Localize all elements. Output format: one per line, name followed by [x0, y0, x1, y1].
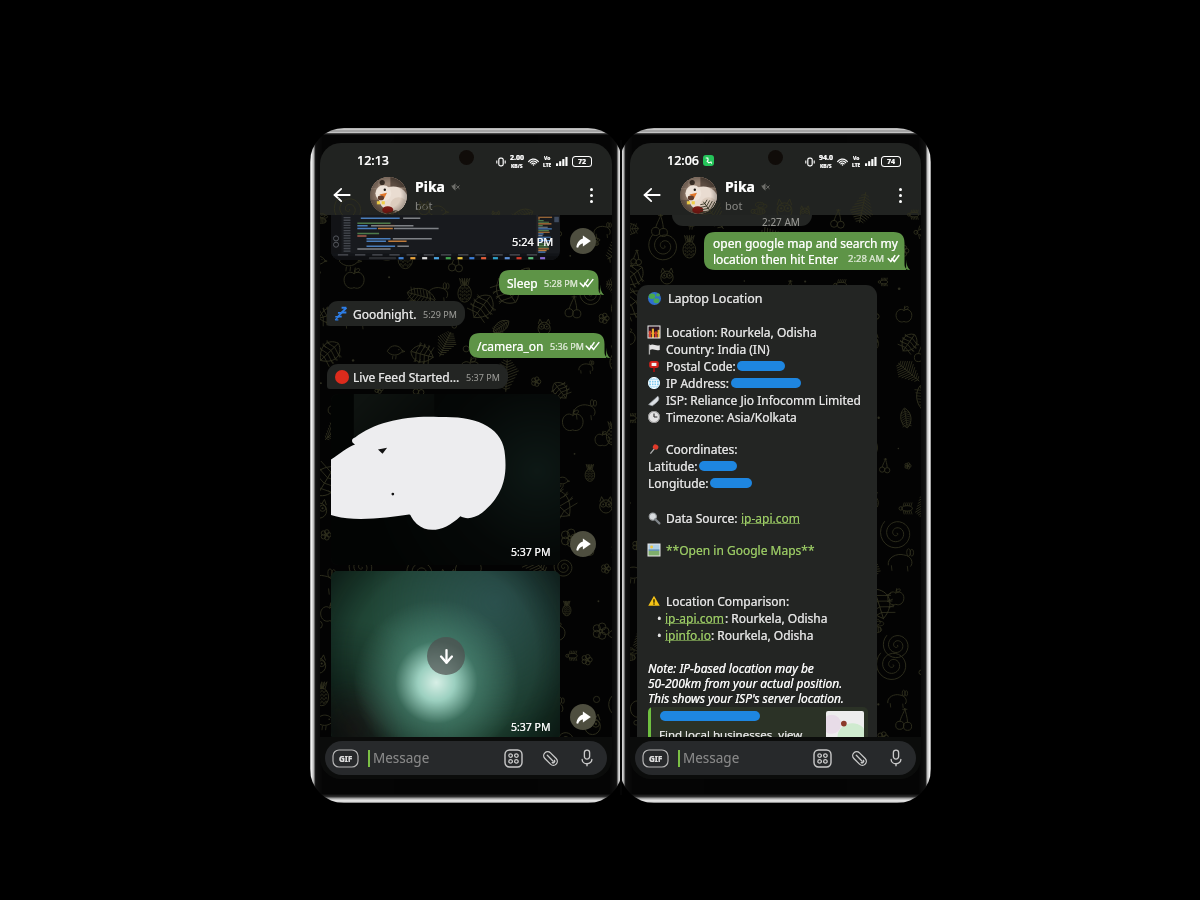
button[interactable]: More options [888, 183, 912, 207]
staticText: 5:37 PM [511, 545, 551, 559]
staticText: • [657, 610, 665, 626]
staticText: GIF [649, 753, 663, 764]
button[interactable]: GIF [643, 750, 668, 767]
staticText: 5:37 PM [511, 720, 551, 734]
button[interactable]: Voice message [575, 746, 599, 770]
staticText: Pika [725, 177, 755, 196]
staticText: 94.0 [819, 153, 833, 163]
staticText: KB/S [511, 163, 523, 170]
staticText: ipinfo.io [665, 627, 711, 643]
staticText: 5:24 PM [512, 234, 554, 249]
staticText: bot [725, 198, 743, 213]
button[interactable]: Photo [331, 394, 560, 565]
staticText: Note: IP-based location may be 50-200km … [648, 660, 844, 706]
staticText: bot [415, 198, 433, 213]
button[interactable]: /camera_on [469, 333, 610, 358]
staticText: Message [683, 749, 740, 767]
button[interactable]: Laptop Location [637, 285, 877, 763]
staticText: Sleep [507, 275, 538, 291]
staticText: 2:28 AM [848, 252, 885, 265]
staticText: Postal Code: [666, 358, 736, 374]
staticText: Vo [853, 155, 860, 162]
staticText: Data Source: [666, 510, 741, 526]
staticText: Timezone: Asia/Kolkata [666, 409, 797, 425]
staticText: Coordinates: [666, 441, 738, 457]
staticText: : Rourkela, Odisha [711, 627, 814, 643]
staticText: : Rourkela, Odisha [725, 610, 828, 626]
staticText: 5:37 PM [466, 371, 500, 383]
button[interactable]: Voice message [884, 746, 908, 770]
staticText: 74 [887, 157, 896, 166]
staticText: 5:29 PM [423, 308, 457, 320]
button[interactable]: Forward [570, 704, 596, 730]
staticText: 12:13 [357, 152, 390, 169]
staticText: Live Feed Started… [353, 369, 460, 385]
staticText: ip-api.com [741, 510, 801, 526]
staticText: LTE [852, 162, 861, 169]
staticText: Find local businesses, view [659, 727, 803, 743]
button[interactable]: Find local businesses, view [648, 707, 868, 757]
staticText: KB/S [820, 163, 832, 170]
staticText: 12:06 [667, 152, 700, 169]
button[interactable]: Screenshot [331, 215, 560, 260]
button[interactable]: Back [639, 182, 665, 208]
staticText: Location: Rourkela, Odisha [666, 324, 817, 340]
button[interactable]: More options [579, 183, 603, 207]
staticText: Latitude: [648, 458, 698, 474]
staticText: IP Address: [666, 375, 730, 391]
staticText: Country: India (IN) [666, 341, 770, 357]
button[interactable]: open google map and search my [704, 232, 910, 270]
staticText: open google map and search my [713, 235, 898, 251]
staticText: 5:36 PM [550, 340, 584, 352]
button[interactable]: Stickers [501, 746, 525, 770]
staticText: Location Comparison: [666, 593, 790, 609]
staticText: GIF [339, 753, 353, 764]
staticText: • [657, 627, 665, 643]
button[interactable]: Live Feed Started… [327, 364, 508, 389]
button[interactable]: Back [329, 182, 355, 208]
staticText: Message [373, 749, 430, 767]
staticText: 2:27 AM [762, 215, 800, 226]
staticText: 72 [578, 157, 587, 166]
button[interactable]: Goodnight. [327, 301, 465, 326]
staticText: Pika [415, 177, 445, 196]
staticText: Vo [544, 155, 551, 162]
staticText: 5:28 PM [544, 277, 578, 289]
staticText: 2.00 [510, 153, 524, 163]
button[interactable]: Forward [570, 531, 596, 557]
staticText: Laptop Location [668, 290, 763, 307]
staticText: location then hit Enter [713, 251, 839, 267]
button[interactable]: Forward [570, 228, 596, 254]
staticText: ip-api.com [665, 610, 725, 626]
staticText: ISP: Reliance Jio Infocomm Limited [666, 392, 861, 408]
staticText: /camera_on [477, 338, 544, 354]
button[interactable]: GIF [333, 750, 358, 767]
button[interactable]: Sleep [499, 270, 604, 295]
button[interactable]: Download [427, 637, 465, 675]
button[interactable]: Attach [847, 746, 871, 770]
button[interactable]: Video [331, 571, 560, 740]
button[interactable]: Stickers [810, 746, 834, 770]
staticText: Longitude: [648, 475, 709, 491]
staticText: Goodnight. [353, 306, 417, 322]
staticText: **Open in Google Maps** [666, 542, 815, 558]
button[interactable]: Attach [538, 746, 562, 770]
staticText: LTE [543, 162, 552, 169]
